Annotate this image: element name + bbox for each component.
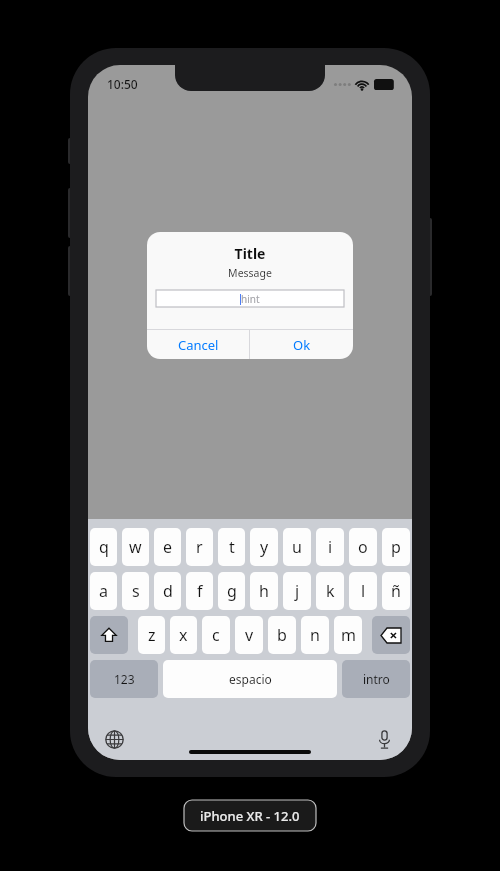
staticText: Message [147,266,353,280]
button[interactable]: i [316,528,344,566]
button[interactable]: w [122,528,149,566]
staticText: c [212,624,220,646]
button[interactable]: e [154,528,181,566]
staticText: intro [363,671,390,687]
button[interactable]: ñ [382,572,410,610]
staticText: g [227,580,237,602]
staticText: w [129,536,142,558]
button[interactable]: v [235,616,263,654]
button[interactable]: l [349,572,377,610]
staticText: a [99,580,108,602]
button[interactable]: q [90,528,117,566]
button[interactable]: f [186,572,213,610]
button[interactable]: Cancel [147,330,249,359]
button[interactable]: Dictation [370,725,398,753]
staticText: k [326,580,335,602]
button[interactable]: k [316,572,344,610]
staticText: i [328,536,333,558]
button[interactable]: 123 [90,660,158,698]
staticText: 123 [114,671,135,687]
button[interactable]: r [186,528,213,566]
button[interactable]: Shift [90,616,128,654]
button[interactable]: espacio [163,660,337,698]
button[interactable]: j [283,572,311,610]
button[interactable]: a [90,572,117,610]
staticText: d [163,580,173,602]
button[interactable]: u [283,528,311,566]
button[interactable]: g [218,572,245,610]
staticText: v [245,624,254,646]
button[interactable]: c [202,616,230,654]
staticText: y [260,536,269,558]
staticText: f [197,580,203,602]
staticText: q [99,536,109,558]
button[interactable]: n [301,616,329,654]
staticText: e [163,536,173,558]
button[interactable]: z [138,616,165,654]
staticText: s [132,580,140,602]
button[interactable]: p [382,528,410,566]
staticText: l [361,580,366,602]
staticText: hint [241,292,260,306]
button[interactable]: o [349,528,377,566]
staticText: Title [147,244,353,263]
staticText: u [292,536,302,558]
button[interactable]: Change keyboard language [100,725,128,753]
button[interactable]: iPhone XR - 12.0 [184,800,316,831]
staticText: x [179,624,188,646]
button[interactable]: d [154,572,181,610]
staticText: t [229,536,235,558]
button[interactable]: intro [342,660,410,698]
staticText: r [196,536,203,558]
staticText: b [277,624,287,646]
staticText: p [391,536,401,558]
staticText: j [295,580,300,602]
staticText: ñ [391,580,401,602]
button[interactable]: x [170,616,197,654]
staticText: m [341,624,356,646]
staticText: iPhone XR - 12.0 [200,807,300,825]
button[interactable]: t [218,528,245,566]
button[interactable]: Ok [250,330,353,359]
button[interactable]: h [250,572,278,610]
staticText: h [259,580,269,602]
button[interactable]: hint [156,290,344,307]
staticText: Cancel [178,336,219,354]
staticText: Ok [293,336,311,354]
staticText: n [310,624,320,646]
button[interactable]: y [250,528,278,566]
staticText: 10:50 [107,76,138,92]
button[interactable]: b [268,616,296,654]
button[interactable]: Backspace [372,616,410,654]
button[interactable]: s [122,572,149,610]
staticText: z [148,624,156,646]
staticText: espacio [229,671,272,687]
staticText: o [358,536,368,558]
button[interactable]: m [334,616,362,654]
